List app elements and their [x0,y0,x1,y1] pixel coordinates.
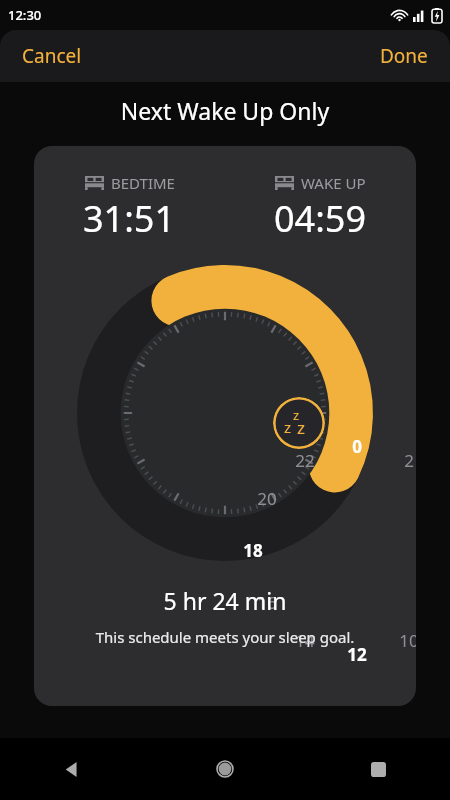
staticText: 5 hr 24 min [34,585,416,616]
staticText: 2 [404,449,414,471]
button[interactable]: Bedtime [273,397,325,449]
staticText: BEDTIME [111,173,175,193]
staticText: 12 [347,643,367,665]
staticText: z [293,406,300,424]
staticText: 16 [257,591,277,613]
staticText: WAKE UP [301,173,366,193]
staticText: z [297,416,305,439]
staticText: z [284,417,292,437]
staticText: 22 [295,449,315,471]
staticText: This schedule meets your sleep goal. [34,627,416,647]
staticText: 0 [352,435,362,457]
button[interactable]: Recents [356,747,400,791]
staticText: Cancel [22,43,82,69]
staticText: 10 [399,629,416,651]
staticText: Next Wake Up Only [0,95,450,126]
staticText: 12:30 [8,6,42,24]
staticText: 04:59 [274,194,367,243]
staticText: 31:51 [83,194,176,243]
staticText: 18 [243,539,263,561]
staticText: Done [380,43,428,69]
button[interactable]: Back [50,747,94,791]
staticText: 14 [295,629,315,651]
staticText: 20 [257,487,277,509]
button[interactable]: Home [203,747,247,791]
button[interactable]: Cancel [0,30,104,82]
button[interactable]: Done [358,30,450,82]
